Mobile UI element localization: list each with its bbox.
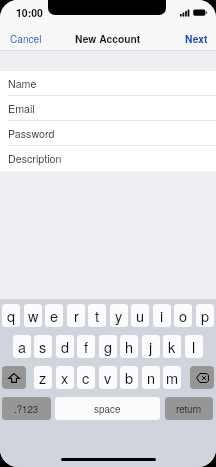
staticText: Password <box>8 126 55 141</box>
button[interactable]: s <box>34 335 52 358</box>
staticText: p <box>201 305 210 326</box>
staticText: g <box>104 336 113 357</box>
button[interactable]: p <box>196 304 214 327</box>
staticText: h <box>125 336 134 357</box>
staticText: z <box>39 367 47 388</box>
staticText: f <box>84 336 89 357</box>
staticText: e <box>50 305 59 326</box>
staticText: a <box>18 336 27 357</box>
button[interactable]: Email <box>0 96 216 121</box>
staticText: Email <box>8 101 35 116</box>
staticText: Description <box>8 151 62 166</box>
button[interactable]: q <box>2 304 20 327</box>
staticText: r <box>74 305 79 326</box>
button[interactable]: h <box>120 335 138 358</box>
staticText: k <box>168 336 176 357</box>
staticText: w <box>28 305 39 326</box>
staticText: v <box>104 367 112 388</box>
staticText: New Account <box>75 31 141 46</box>
staticText: t <box>95 305 100 326</box>
button[interactable]: c <box>77 366 95 389</box>
staticText: c <box>82 367 90 388</box>
button[interactable]: Next <box>175 25 216 52</box>
button[interactable]: d <box>56 335 74 358</box>
button[interactable]: n <box>142 366 160 389</box>
staticText: Cancel <box>10 31 42 45</box>
staticText: .?123 <box>14 402 39 416</box>
staticText: b <box>125 367 134 388</box>
staticText: q <box>7 305 16 326</box>
staticText: Name <box>8 76 37 91</box>
staticText: s <box>39 336 47 357</box>
button[interactable]: w <box>24 304 42 327</box>
button[interactable]: Cancel <box>0 25 52 51</box>
button[interactable]: u <box>131 304 149 327</box>
staticText: d <box>61 336 70 357</box>
button[interactable]: l <box>185 335 203 358</box>
button[interactable]: Password <box>0 121 216 146</box>
button[interactable]: x <box>56 366 74 389</box>
button[interactable]: return <box>165 397 213 420</box>
button[interactable]: m <box>163 366 181 389</box>
button[interactable]: b <box>120 366 138 389</box>
staticText: m <box>166 367 179 388</box>
button[interactable]: k <box>163 335 181 358</box>
staticText: n <box>147 367 156 388</box>
button[interactable]: v <box>99 366 117 389</box>
staticText: x <box>61 367 69 388</box>
button[interactable]: Name <box>0 71 216 96</box>
button[interactable]: t <box>88 304 106 327</box>
staticText: return <box>176 402 202 416</box>
staticText: space <box>94 402 121 416</box>
staticText: l <box>192 336 196 357</box>
staticText: i <box>160 305 164 326</box>
staticText: y <box>115 305 123 326</box>
button[interactable]: f <box>77 335 95 358</box>
button[interactable]: Shift <box>2 366 26 389</box>
button[interactable]: space <box>55 397 160 420</box>
button[interactable]: r <box>67 304 85 327</box>
button[interactable]: i <box>153 304 171 327</box>
button[interactable]: o <box>174 304 192 327</box>
staticText: o <box>179 305 188 326</box>
button[interactable]: a <box>13 335 31 358</box>
button[interactable]: g <box>99 335 117 358</box>
button[interactable]: z <box>34 366 52 389</box>
button[interactable]: y <box>110 304 128 327</box>
button[interactable]: e <box>45 304 63 327</box>
button[interactable]: Delete <box>190 366 214 389</box>
staticText: u <box>136 305 145 326</box>
staticText: j <box>149 336 153 357</box>
staticText: 10:00 <box>16 5 43 20</box>
button[interactable]: j <box>142 335 160 358</box>
staticText: Next <box>185 31 208 46</box>
button[interactable]: Description <box>0 146 216 171</box>
button[interactable]: .?123 <box>2 397 51 420</box>
